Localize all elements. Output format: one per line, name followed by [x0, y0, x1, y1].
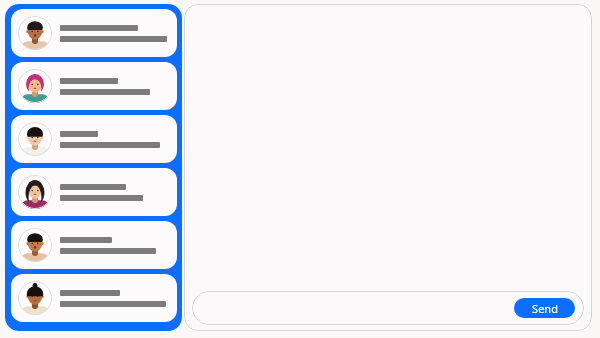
button[interactable]: Send message	[514, 298, 575, 318]
button[interactable]	[11, 115, 177, 163]
button[interactable]	[11, 274, 177, 322]
button[interactable]	[11, 9, 177, 57]
button[interactable]	[11, 221, 177, 269]
button[interactable]	[11, 62, 177, 110]
button[interactable]	[11, 168, 177, 216]
staticText: Send	[532, 301, 558, 316]
button[interactable]: Send message	[192, 291, 584, 325]
